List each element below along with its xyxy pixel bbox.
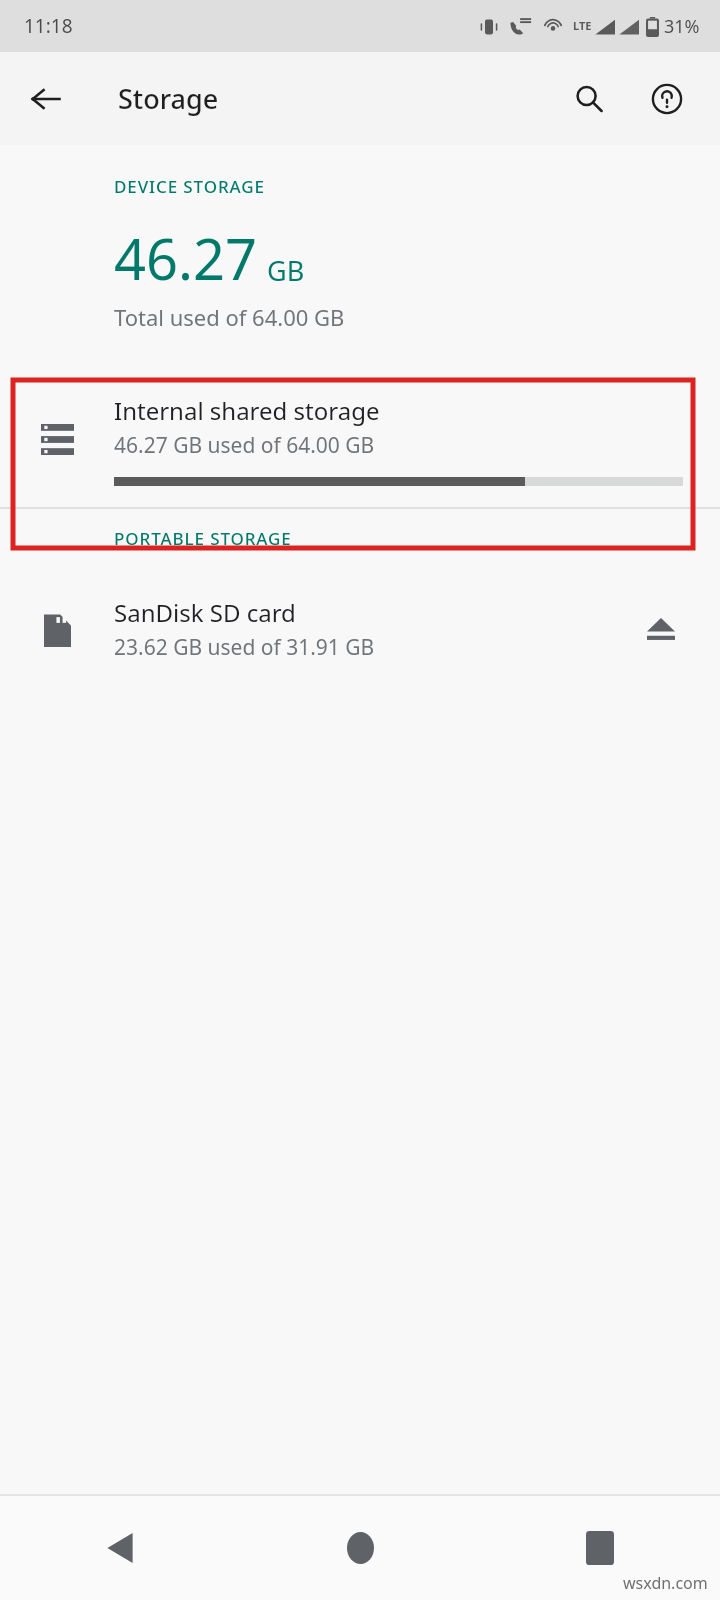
staticText: wsxdn.com [623,1572,708,1594]
button[interactable]: Back [0,1496,240,1600]
staticText: 31% [664,14,700,39]
staticText: PORTABLE STORAGE [114,527,292,550]
button[interactable]: Recent apps [480,1496,720,1600]
staticText: Total used of 64.00 GB [114,302,345,332]
staticText: Internal shared storage [114,394,380,427]
button[interactable]: Eject SD card [630,598,692,660]
staticText: DEVICE STORAGE [114,175,265,198]
button[interactable]: Help [636,68,698,130]
staticText: LTE [573,18,592,33]
staticText: GB [267,252,305,289]
staticText: 11:18 [24,13,73,39]
button[interactable]: Search [558,68,620,130]
staticText: 46.27 [114,220,258,296]
button[interactable]: Internal shared storage [0,372,720,507]
staticText: 23.62 GB used of 31.91 GB [114,633,375,662]
staticText: Storage [118,80,219,117]
button[interactable]: Back [14,67,78,131]
staticText: 46.27 GB used of 64.00 GB [114,431,375,460]
button[interactable]: Home [240,1496,480,1600]
staticText: SanDisk SD card [114,596,296,629]
button[interactable]: SanDisk SD card [0,574,720,684]
